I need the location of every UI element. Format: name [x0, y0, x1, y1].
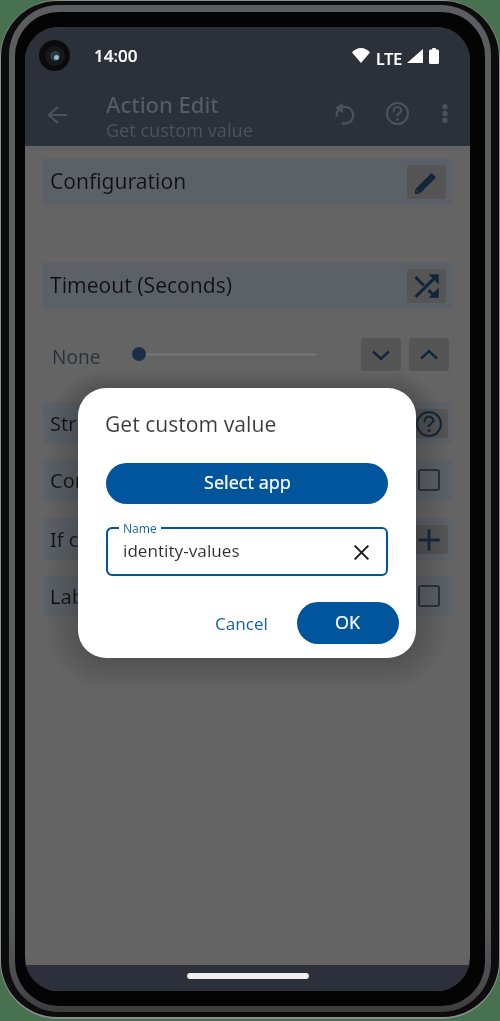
staticText: Strict mode [50, 410, 410, 437]
staticText: Get custom value [105, 410, 277, 439]
staticText: Configuration [50, 167, 405, 196]
button[interactable]: Action [407, 269, 446, 303]
staticText: 14:00 [94, 44, 138, 67]
staticText: Get custom value [106, 118, 253, 143]
button[interactable]: Increase [409, 338, 449, 371]
button[interactable]: Help [373, 89, 421, 137]
staticText: If condition [50, 526, 410, 553]
staticText: Name [123, 520, 157, 534]
button[interactable]: Label [43, 575, 452, 617]
staticText: OK [335, 610, 361, 635]
button[interactable]: Cancel [205, 601, 278, 645]
button[interactable]: Action [407, 165, 446, 199]
button[interactable]: More options [422, 90, 468, 136]
button[interactable]: OK [297, 602, 399, 644]
staticText: Cancel [215, 612, 268, 635]
staticText: Continue on error [50, 467, 410, 494]
button[interactable]: Undo [320, 89, 368, 137]
button[interactable]: Navigate up [33, 91, 81, 139]
staticText: None [52, 344, 101, 370]
button[interactable]: Strict mode [43, 402, 452, 444]
staticText: Timeout (Seconds) [50, 271, 405, 300]
button[interactable]: If condition [43, 518, 452, 560]
button[interactable]: Decrease [361, 338, 401, 371]
button[interactable]: Action [410, 525, 448, 554]
staticText: identity-values [123, 539, 240, 562]
button[interactable]: Clear text [349, 540, 373, 564]
staticText: Label [50, 583, 410, 610]
button[interactable]: Action [410, 409, 448, 438]
button[interactable]: Select app [106, 463, 388, 504]
staticText: Action Edit [106, 89, 219, 119]
button[interactable]: Continue on error [43, 459, 452, 501]
button[interactable]: Timeout (Seconds) [43, 262, 452, 309]
staticText: Select app [204, 470, 291, 495]
staticText: LTE [376, 48, 403, 70]
button[interactable]: Configuration [43, 158, 452, 205]
